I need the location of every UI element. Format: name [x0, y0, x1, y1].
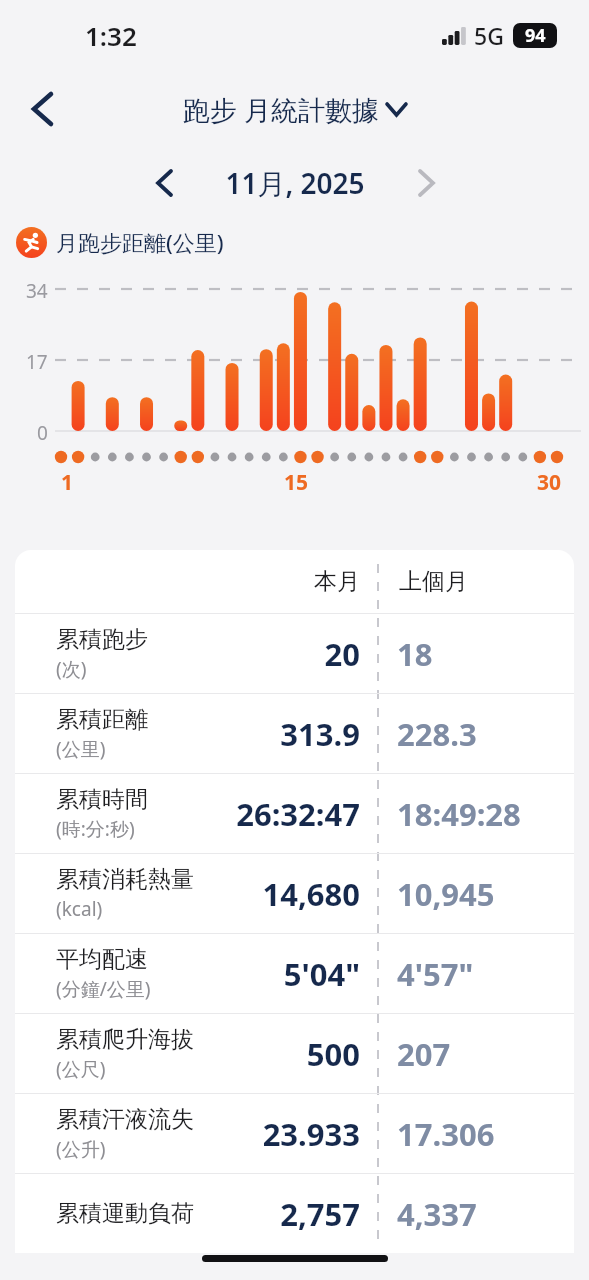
button[interactable]: 累積時間: [15, 774, 574, 853]
staticText: (分鐘/公里): [56, 976, 151, 1002]
staticText: 累積消耗熱量: [56, 865, 194, 894]
button[interactable]: Previous month: [138, 157, 190, 209]
staticText: (次): [56, 656, 87, 682]
staticText: 23.933: [262, 1113, 360, 1155]
staticText: (公里): [56, 736, 106, 762]
staticText: 平均配速: [56, 945, 148, 974]
staticText: 累積爬升海拔: [56, 1025, 194, 1054]
staticText: 94: [525, 23, 546, 48]
staticText: 0: [37, 420, 48, 446]
staticText: 累積跑步: [56, 625, 148, 654]
staticText: 1: [61, 468, 74, 497]
button[interactable]: 平均配速: [15, 934, 574, 1013]
button[interactable]: 累積汗液流失: [15, 1094, 574, 1173]
staticText: 207: [397, 1033, 451, 1075]
staticText: (時:分:秒): [56, 816, 135, 842]
staticText: (kcal): [56, 896, 103, 922]
button[interactable]: Next month: [400, 157, 452, 209]
staticText: 10,945: [397, 873, 495, 915]
button[interactable]: Back: [14, 81, 70, 137]
button[interactable]: 累積消耗熱量: [15, 854, 574, 933]
staticText: 17.306: [397, 1113, 495, 1155]
staticText: 26:32:47: [236, 793, 360, 835]
staticText: (公尺): [56, 1056, 106, 1082]
staticText: 4,337: [397, 1193, 477, 1235]
staticText: 11月, 2025: [225, 164, 365, 202]
staticText: 34: [26, 278, 48, 304]
staticText: 1:32: [85, 18, 137, 53]
button[interactable]: 累積爬升海拔: [15, 1014, 574, 1093]
staticText: 18: [397, 633, 433, 675]
staticText: 20: [324, 633, 360, 675]
staticText: 313.9: [280, 713, 360, 755]
staticText: 17: [26, 349, 48, 375]
staticText: 15: [284, 468, 309, 497]
staticText: (公升): [56, 1136, 106, 1162]
staticText: 累積汗液流失: [56, 1105, 194, 1134]
staticText: 500: [306, 1033, 360, 1075]
staticText: 228.3: [397, 713, 477, 755]
button[interactable]: 跑步 月統計數據: [183, 91, 406, 128]
staticText: 累積距離: [56, 705, 148, 734]
staticText: 累積時間: [56, 785, 148, 814]
staticText: 累積運動負荷: [56, 1199, 194, 1228]
button[interactable]: 累積運動負荷: [15, 1174, 574, 1253]
button[interactable]: 累積跑步: [15, 614, 574, 693]
staticText: 14,680: [262, 873, 360, 915]
staticText: 月跑步距離(公里): [56, 227, 224, 257]
staticText: 18:49:28: [397, 793, 521, 835]
staticText: 5G: [474, 20, 504, 51]
button[interactable]: 累積距離: [15, 694, 574, 773]
staticText: 30: [537, 468, 562, 497]
staticText: 上個月: [399, 567, 468, 596]
staticText: 4'57": [397, 953, 474, 995]
staticText: 5'04": [283, 953, 360, 995]
staticText: 本月: [314, 567, 360, 596]
staticText: 跑步 月統計數據: [183, 91, 380, 128]
staticText: 2,757: [280, 1193, 360, 1235]
